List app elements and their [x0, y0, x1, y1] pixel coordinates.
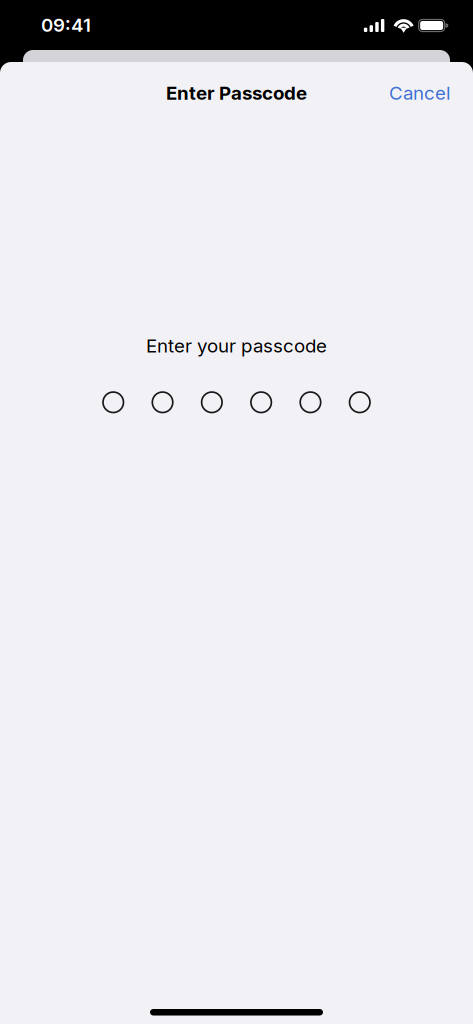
staticText: 09:41	[41, 14, 91, 36]
button[interactable]: Cancel	[369, 71, 473, 115]
staticText: Cancel	[389, 82, 451, 104]
staticText: Enter your passcode	[146, 334, 327, 357]
staticText: Enter Passcode	[166, 82, 307, 104]
button[interactable]: Enter your passcode	[0, 326, 473, 421]
